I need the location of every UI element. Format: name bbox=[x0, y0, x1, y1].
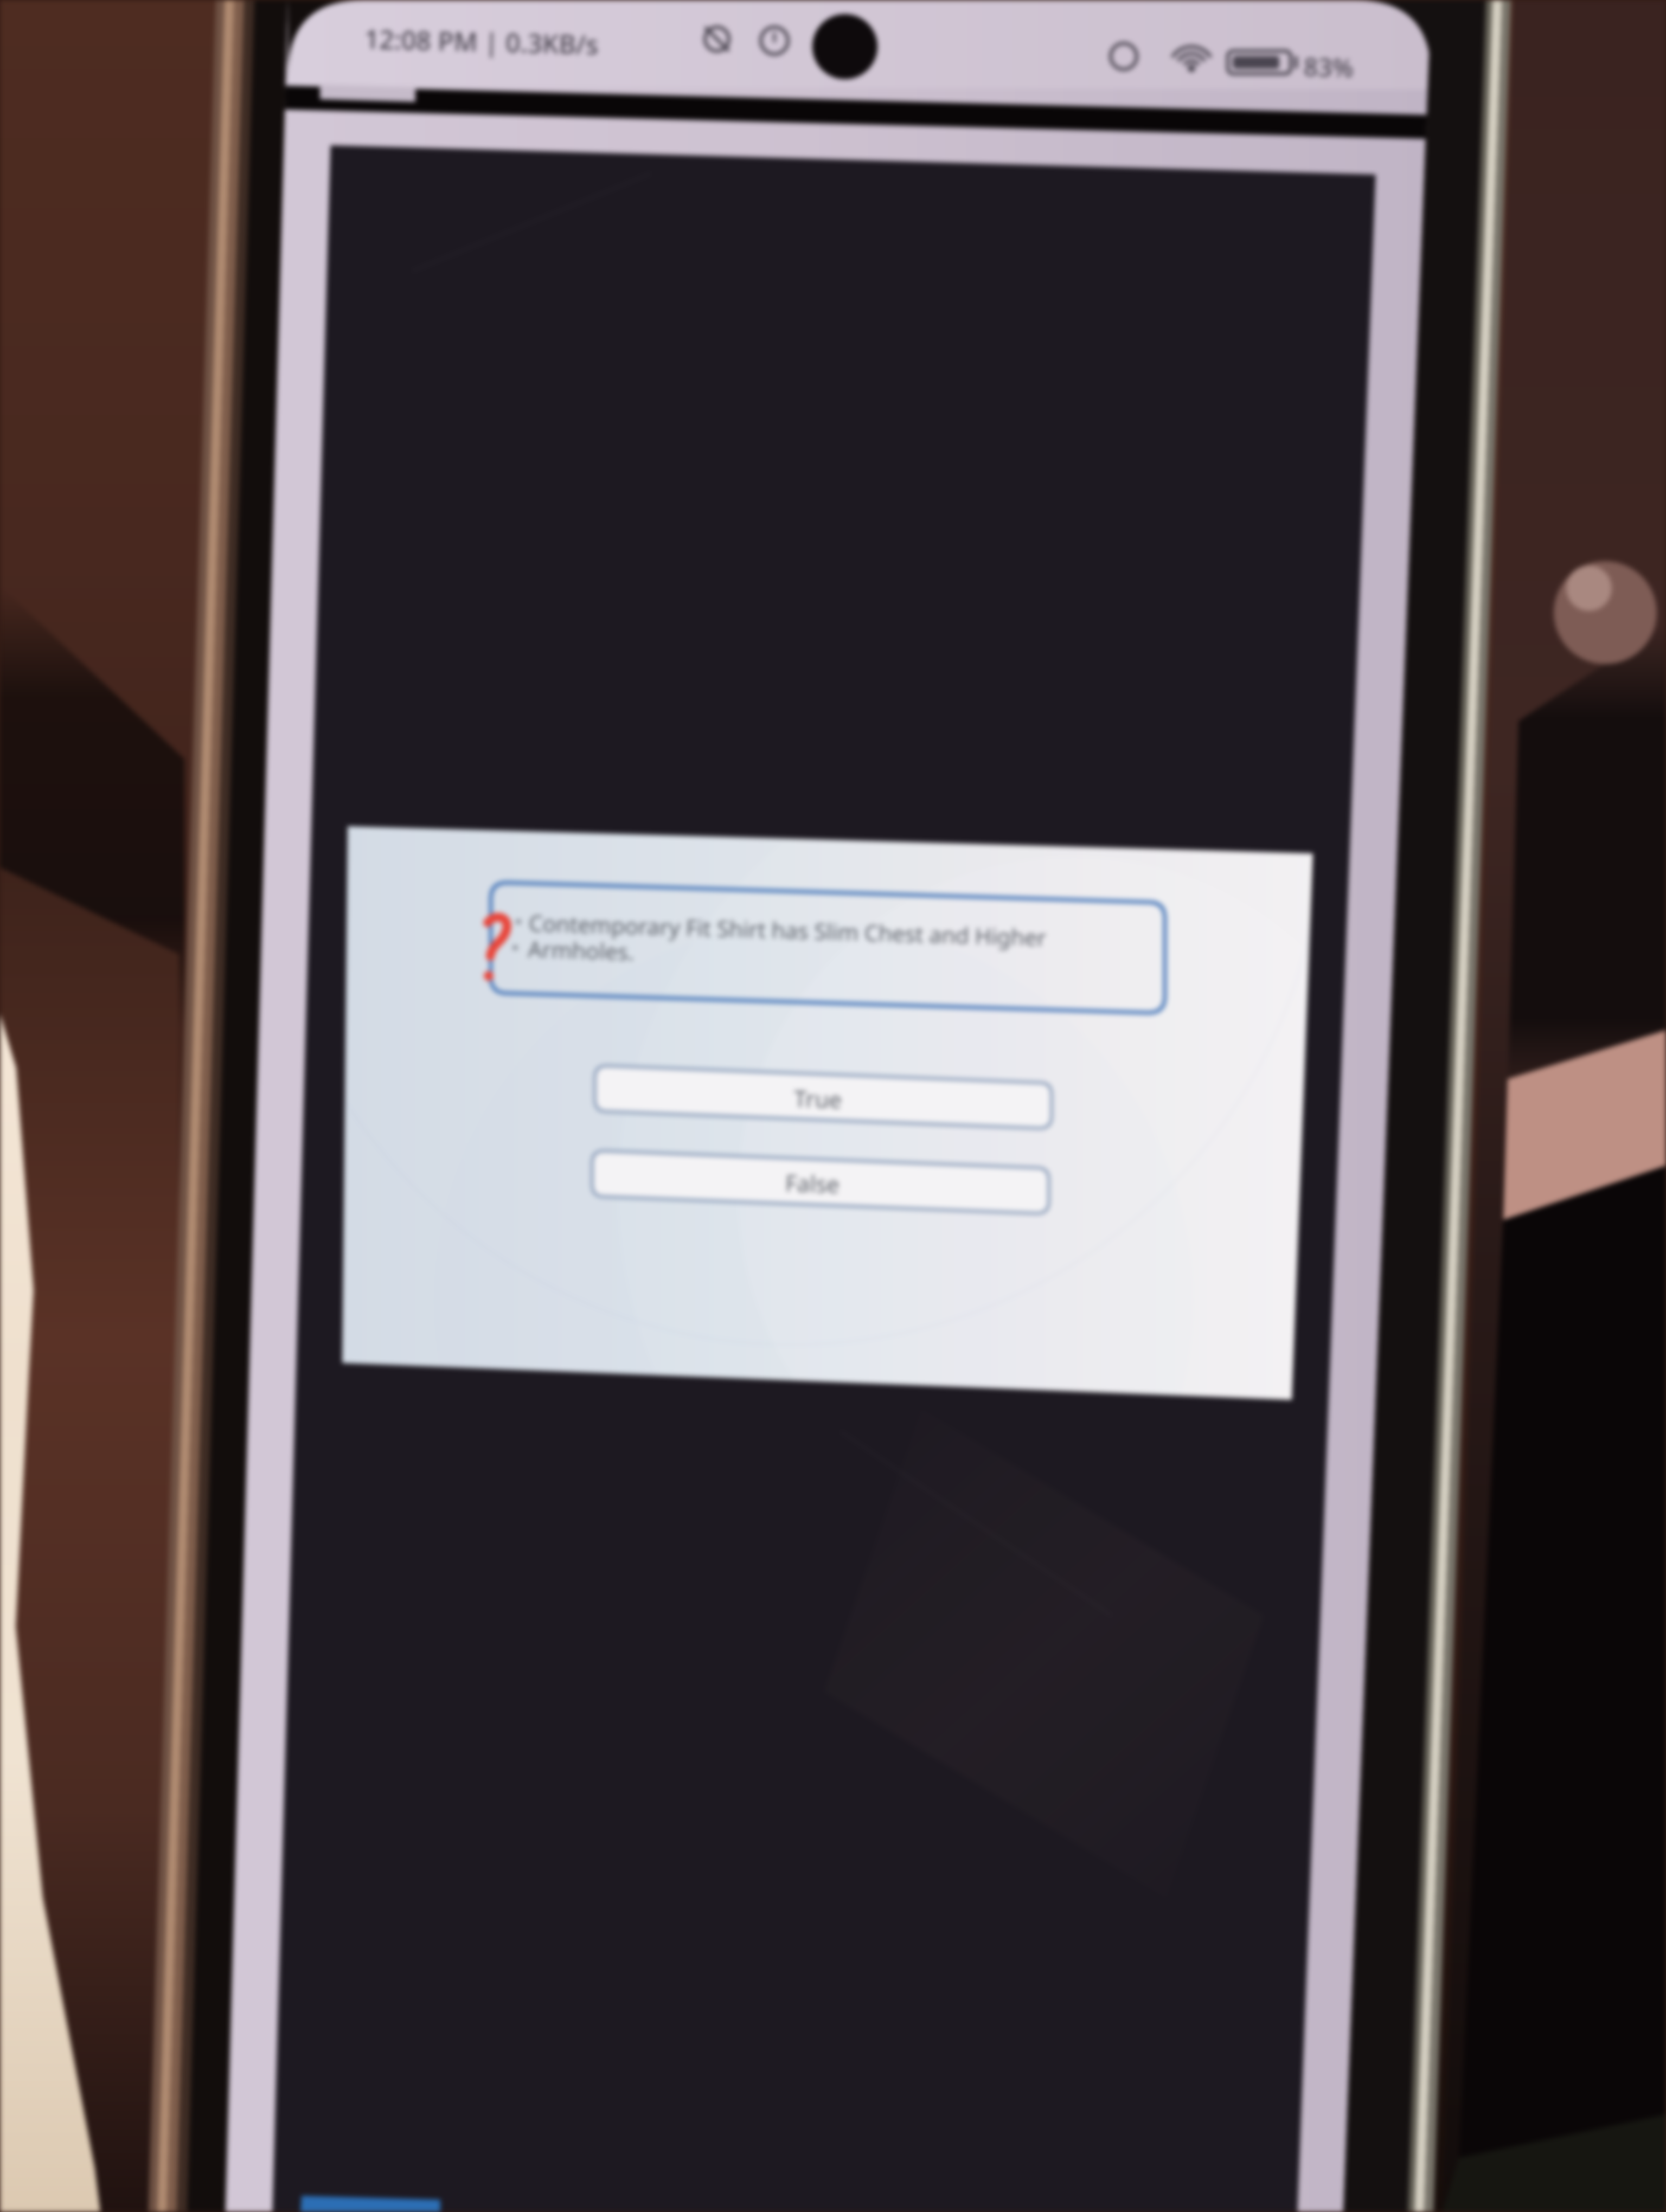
button[interactable]: Silent mode bbox=[699, 21, 736, 59]
staticText: False bbox=[785, 1167, 840, 1199]
staticText: 12:08 PM | 0.3KB/s bbox=[364, 21, 599, 62]
button[interactable]: True bbox=[595, 1064, 1052, 1113]
button[interactable]: Battery 83 percent bbox=[1225, 44, 1300, 82]
staticText: Contemporary Fit Shirt has Slim Chest an… bbox=[528, 908, 1047, 979]
staticText: 83% bbox=[1303, 49, 1354, 85]
staticText: True bbox=[794, 1083, 843, 1115]
button[interactable]: Wi-Fi bbox=[1167, 34, 1216, 72]
button[interactable]: False bbox=[592, 1149, 1049, 1198]
button[interactable]: Contemporary Fit Shirt has Slim Chest an… bbox=[491, 883, 1165, 1013]
button[interactable]: Alarm bbox=[756, 22, 794, 60]
